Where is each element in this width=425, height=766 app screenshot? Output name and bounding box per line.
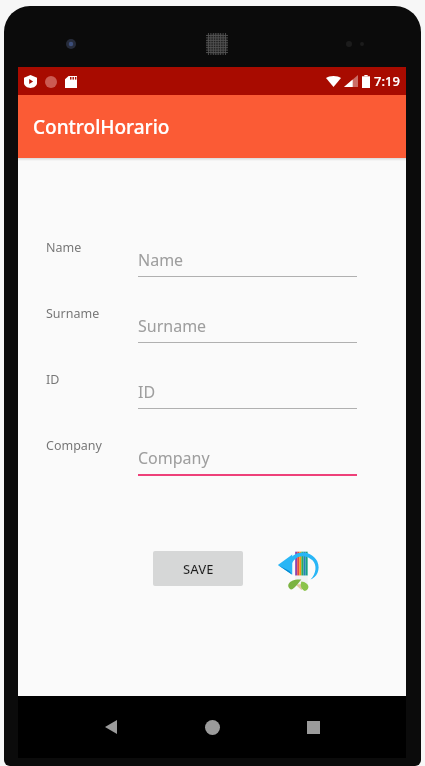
staticText: Surname: [46, 305, 136, 322]
staticText: Company: [138, 447, 210, 469]
button[interactable]: Surname: [18, 303, 406, 353]
button[interactable]: ID: [18, 369, 406, 419]
button[interactable]: Name: [18, 237, 406, 287]
staticText: Company: [46, 437, 136, 454]
staticText: Name: [138, 249, 184, 271]
staticText: Surname: [138, 315, 207, 337]
staticText: Name: [46, 239, 136, 256]
staticText: SAVE: [183, 560, 214, 578]
staticText: ID: [138, 381, 156, 403]
button[interactable]: Home: [195, 710, 229, 744]
staticText: 7:19: [374, 72, 400, 90]
button[interactable]: Company: [18, 435, 406, 485]
button[interactable]: Back: [94, 710, 128, 744]
staticText: ControlHorario: [33, 114, 170, 140]
staticText: ID: [46, 371, 136, 388]
button[interactable]: Recent apps: [296, 710, 330, 744]
button[interactable]: Restore: [273, 542, 325, 594]
button[interactable]: SAVE: [153, 551, 243, 586]
